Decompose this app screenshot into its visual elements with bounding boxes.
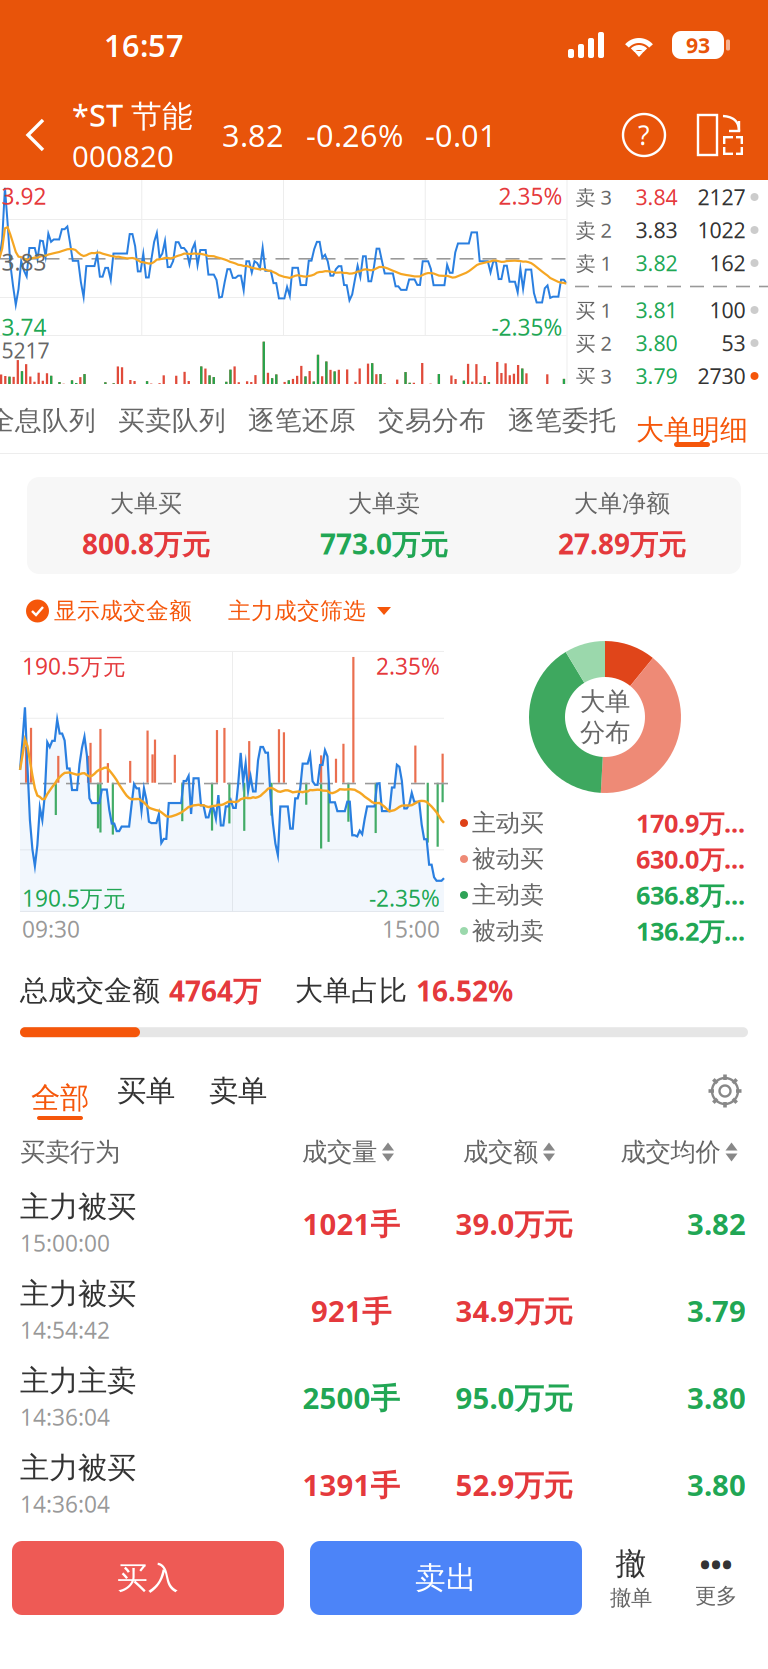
staticText: 3.82 — [635, 249, 677, 277]
staticText: 逐笔还原 — [248, 404, 356, 437]
staticText: 大单卖 — [348, 489, 420, 518]
staticText: 95.0万元 — [455, 1378, 572, 1417]
staticText: *ST 节能 — [72, 95, 193, 135]
staticText: 大单 — [580, 686, 630, 717]
staticText: 27.89万元 — [558, 525, 686, 562]
button[interactable]: Settings — [706, 1072, 768, 1110]
button[interactable]: 全部 — [20, 1058, 100, 1124]
staticText: 卖 3 — [575, 184, 611, 210]
staticText: -2.35% — [491, 312, 562, 342]
staticText: 逐笔委托 — [508, 404, 616, 437]
staticText: ••• — [699, 1544, 732, 1583]
staticText: 3.83 — [635, 216, 677, 244]
staticText: 买卖行为 — [20, 1136, 120, 1167]
staticText: 全部 — [31, 1080, 89, 1116]
staticText: 2500手 — [302, 1378, 399, 1417]
staticText: 1021手 — [302, 1204, 399, 1243]
staticText: 000820 — [72, 136, 174, 175]
button[interactable]: 卖出 — [284, 1541, 582, 1615]
staticText: 136.2万元 — [636, 914, 748, 948]
staticText: 主力主卖 — [20, 1363, 136, 1399]
staticText: 全息队列 — [0, 404, 96, 437]
staticText: 被动买 — [472, 844, 544, 874]
staticText: 09:30 — [22, 914, 80, 944]
staticText: 800.8万元 — [82, 525, 210, 562]
staticText: 撤单 — [610, 1585, 652, 1611]
staticText: 买 3 — [575, 363, 611, 389]
staticText: 3.79 — [635, 362, 677, 390]
staticText: ? — [638, 117, 650, 153]
staticText: 3.83 — [1, 247, 46, 277]
staticText: -0.26% — [306, 115, 403, 155]
button[interactable]: 买卖队列 — [107, 387, 237, 454]
staticText: 主动买 — [472, 808, 544, 838]
staticText: 1391手 — [302, 1465, 399, 1504]
staticText: 100 — [709, 296, 745, 324]
button[interactable]: 成交额 — [428, 1124, 590, 1180]
staticText: 卖 2 — [575, 217, 611, 243]
staticText: 3.81 — [635, 296, 677, 324]
staticText: 成交量 — [302, 1136, 377, 1167]
staticText: 卖 1 — [575, 250, 611, 276]
button[interactable]: Help — [614, 90, 674, 180]
staticText: 190.5万元 — [22, 883, 126, 913]
staticText: 交易分布 — [378, 404, 486, 437]
staticText: 2.35% — [376, 651, 440, 681]
staticText: 921手 — [311, 1291, 391, 1330]
button[interactable]: 成交量 — [268, 1124, 428, 1180]
staticText: 大单占比 — [295, 973, 407, 1008]
button[interactable]: 逐笔委托 — [497, 387, 627, 454]
staticText: 3.80 — [687, 1378, 746, 1417]
button[interactable]: Split screen — [674, 90, 768, 180]
staticText: 14:36:04 — [20, 1402, 110, 1432]
button[interactable]: 主力被买 — [0, 1267, 768, 1354]
button[interactable]: 主力被买 — [0, 1441, 768, 1528]
staticText: 16:57 — [104, 25, 184, 65]
staticText: 买入 — [117, 1559, 179, 1597]
button[interactable]: 卖单 — [192, 1058, 284, 1124]
staticText: 主动卖 — [472, 880, 544, 910]
button[interactable]: 交易分布 — [367, 387, 497, 454]
staticText: 成交额 — [463, 1136, 538, 1167]
staticText: 39.0万元 — [455, 1204, 572, 1243]
button[interactable]: 买入 — [0, 1541, 284, 1615]
button[interactable]: 主力被买 — [0, 1180, 768, 1267]
staticText: 5217 — [1, 336, 49, 364]
button[interactable]: 全息队列 — [0, 387, 107, 454]
button[interactable]: 主力主卖 — [0, 1354, 768, 1441]
staticText: 被动卖 — [472, 916, 544, 946]
staticText: 53 — [721, 329, 745, 357]
staticText: 主力被买 — [20, 1450, 136, 1486]
button[interactable]: 主力成交筛选 — [192, 587, 391, 635]
button[interactable]: 显示成交金额 — [0, 587, 192, 635]
button[interactable]: 买单 — [100, 1058, 192, 1124]
staticText: 773.0万元 — [320, 525, 448, 562]
staticText: 15:00:00 — [20, 1228, 110, 1258]
button[interactable]: 大单明细 — [627, 387, 757, 454]
staticText: 630.0万元 — [636, 842, 748, 876]
staticText: 4764万 — [169, 972, 261, 1009]
button[interactable]: 撤 — [590, 1538, 672, 1618]
staticText: 显示成交金额 — [54, 597, 192, 625]
staticText: 买 1 — [575, 297, 611, 323]
staticText: 162 — [709, 249, 745, 277]
staticText: 3.84 — [635, 183, 677, 211]
staticText: 更多 — [695, 1583, 737, 1609]
button[interactable]: 成交均价 — [590, 1124, 768, 1180]
button[interactable]: Back — [0, 90, 72, 180]
staticText: 52.9万元 — [455, 1465, 572, 1504]
staticText: 卖单 — [209, 1073, 267, 1109]
staticText: 34.9万元 — [455, 1291, 572, 1330]
staticText: 2127 — [697, 183, 745, 211]
staticText: 总成交金额 — [20, 973, 160, 1008]
staticText: 3.82 — [687, 1204, 746, 1243]
staticText: -0.01 — [425, 115, 497, 155]
button[interactable]: 逐笔还原 — [237, 387, 367, 454]
button[interactable]: ••• — [672, 1538, 768, 1618]
staticText: 15:00 — [382, 914, 440, 944]
staticText: 主力成交筛选 — [228, 597, 366, 625]
staticText: 买 2 — [575, 330, 611, 356]
staticText: 撤 — [615, 1545, 646, 1583]
staticText: 买单 — [117, 1073, 175, 1109]
staticText: 主力被买 — [20, 1276, 136, 1312]
